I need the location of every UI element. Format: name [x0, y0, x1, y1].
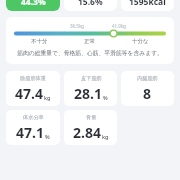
staticText: 皮下脂肪	[81, 75, 102, 82]
button[interactable]: 除脂肪体重	[6, 71, 60, 106]
staticText: 28.1	[74, 84, 102, 103]
button[interactable]: 15.6%	[64, 0, 117, 11]
staticText: kg	[102, 133, 109, 140]
button[interactable]: 1595kcal	[121, 0, 174, 11]
staticText: 十分な	[132, 38, 149, 45]
staticText: 体水分率	[23, 114, 44, 121]
staticText: 47.1	[16, 123, 44, 142]
button[interactable]: 内臓脂肪	[121, 71, 174, 106]
staticText: 骨量	[86, 114, 97, 121]
staticText: 筋肉の総重量で、骨格筋、心筋、平滑筋等を含みます。	[14, 49, 166, 56]
staticText: %	[45, 133, 50, 140]
staticText: 内臓脂肪	[137, 75, 158, 82]
staticText: 除脂肪体重	[20, 75, 46, 82]
button[interactable]: 体水分率	[6, 110, 60, 145]
staticText: %	[103, 94, 108, 101]
button[interactable]: 36.5kg	[6, 17, 174, 64]
button[interactable]: 44.3%	[6, 0, 60, 11]
button[interactable]: 皮下脂肪	[64, 71, 117, 106]
staticText: 正常	[84, 38, 95, 45]
staticText: 36.5kg	[70, 23, 85, 29]
button[interactable]: 骨量	[64, 110, 117, 145]
staticText: 44.3%	[21, 0, 46, 7]
staticText: 2.84	[73, 123, 101, 142]
staticText: 15.6%	[78, 0, 103, 7]
staticText: 41.9kg	[112, 23, 127, 29]
staticText: 1595kcal	[129, 0, 166, 7]
staticText: 47.4	[15, 84, 43, 103]
staticText: 不十分	[31, 38, 48, 45]
staticText: 8	[143, 84, 152, 103]
staticText: kg	[44, 94, 51, 101]
